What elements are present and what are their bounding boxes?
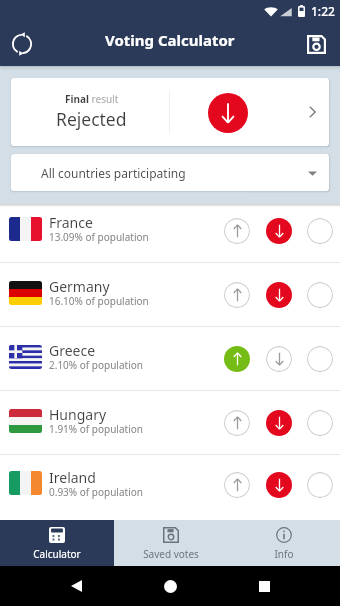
staticText: Ireland xyxy=(49,468,96,487)
button[interactable]: Back xyxy=(58,568,94,604)
button[interactable]: France xyxy=(0,204,340,262)
staticText: Final xyxy=(65,92,89,106)
staticText: Info xyxy=(274,547,294,561)
button[interactable]: Germany xyxy=(0,263,340,326)
button[interactable]: Rejected xyxy=(208,93,248,133)
staticText: 1:22 xyxy=(311,3,335,19)
staticText: 0.93% of population xyxy=(49,485,143,499)
button[interactable]: Reset xyxy=(4,26,40,62)
button[interactable]: Greece xyxy=(0,327,340,390)
button[interactable]: Info xyxy=(227,520,340,566)
staticText: Hungary xyxy=(49,405,107,424)
staticText: Saved votes xyxy=(143,547,199,561)
button[interactable]: Ireland xyxy=(0,455,340,515)
button[interactable]: Hungary xyxy=(0,391,340,454)
staticText: 1.91% of population xyxy=(49,422,143,436)
button[interactable]: Vote yes xyxy=(224,282,250,308)
button[interactable]: Saved votes xyxy=(114,520,227,566)
button[interactable]: Vote no xyxy=(266,346,292,372)
button[interactable]: Vote no xyxy=(266,282,292,308)
button[interactable]: Abstain xyxy=(307,218,333,244)
button[interactable]: Vote yes xyxy=(224,410,250,436)
button[interactable]: Vote yes xyxy=(224,346,250,372)
button[interactable]: Abstain xyxy=(307,472,333,498)
button[interactable]: Recents xyxy=(246,568,282,604)
staticText: 16.10% of population xyxy=(49,294,149,308)
button[interactable]: All countries participating xyxy=(11,154,329,191)
staticText: All countries participating xyxy=(41,165,186,181)
staticText: Rejected xyxy=(56,107,127,131)
button[interactable]: Vote yes xyxy=(224,472,250,498)
button[interactable]: Abstain xyxy=(307,346,333,372)
button[interactable]: Calculator xyxy=(0,520,114,566)
staticText: France xyxy=(49,213,93,232)
button[interactable]: Vote no xyxy=(266,410,292,436)
staticText: 2.10% of population xyxy=(49,358,143,372)
button[interactable]: Vote no xyxy=(266,218,292,244)
button[interactable]: Final xyxy=(11,78,329,146)
button[interactable]: Vote yes xyxy=(224,218,250,244)
button[interactable]: Abstain xyxy=(307,410,333,436)
button[interactable]: Vote no xyxy=(266,472,292,498)
staticText: Calculator xyxy=(33,547,81,561)
staticText: Germany xyxy=(49,277,110,296)
button[interactable]: Abstain xyxy=(307,282,333,308)
button[interactable]: Home xyxy=(152,568,188,604)
staticText: Voting Calculator xyxy=(105,30,235,50)
staticText: result xyxy=(89,92,119,106)
staticText: Greece xyxy=(49,341,96,360)
button[interactable]: Save xyxy=(298,26,334,62)
staticText: 13.09% of population xyxy=(49,230,149,244)
